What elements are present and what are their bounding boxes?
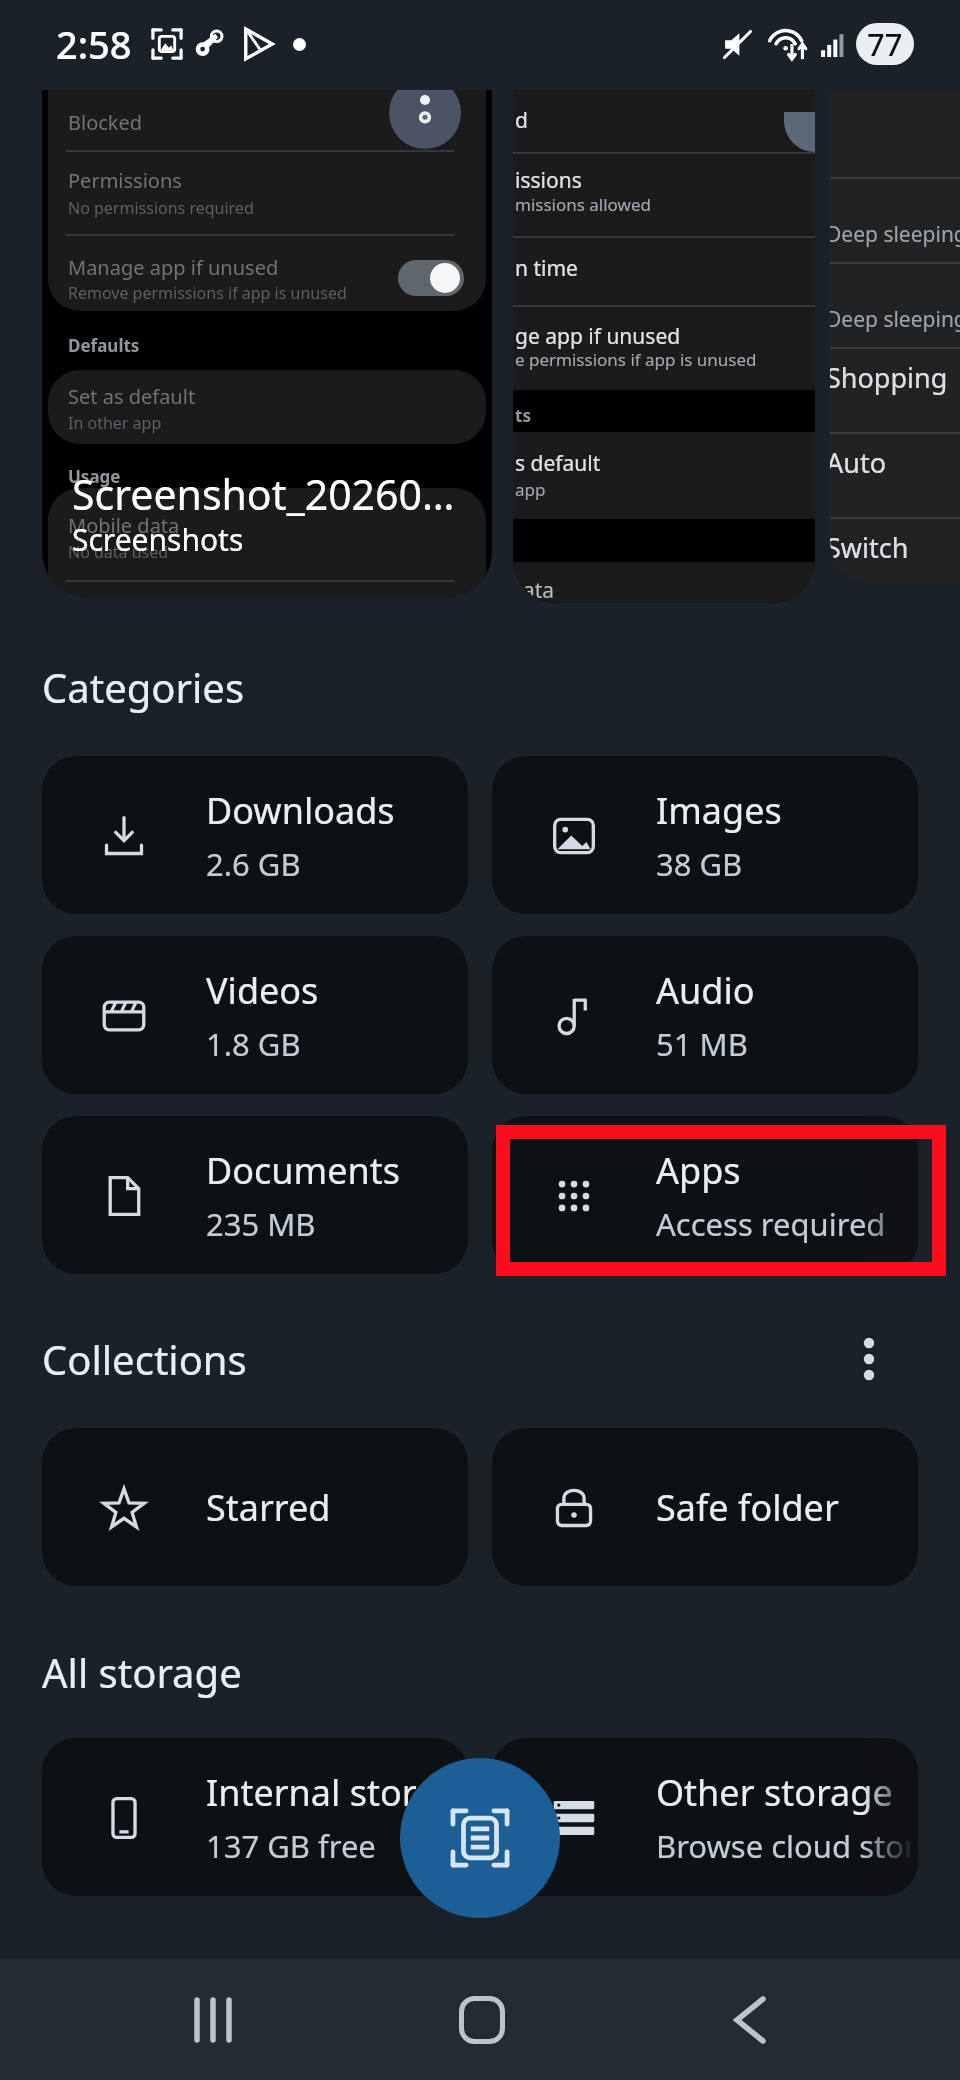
staticText: Documents: [206, 1146, 401, 1195]
button[interactable]: Other storage: [492, 1738, 918, 1896]
staticText: Manage app if unused: [68, 254, 279, 281]
button[interactable]: Downloads: [42, 756, 468, 914]
staticText: Deep sleeping: [830, 220, 960, 249]
staticText: Collections: [42, 1332, 247, 1386]
staticText: In other app: [68, 412, 162, 434]
staticText: Other storage: [656, 1768, 893, 1817]
button[interactable]: Safe folder: [492, 1428, 918, 1586]
staticText: 1.8 GB: [206, 1023, 301, 1065]
button[interactable]: Audio: [492, 936, 918, 1094]
staticText: Categories: [42, 660, 245, 714]
button[interactable]: Videos: [42, 936, 468, 1094]
staticText: 51 MB: [656, 1023, 748, 1065]
button[interactable]: Blocked: [42, 90, 492, 596]
staticText: ge app if unused: [515, 322, 681, 351]
staticText: ts: [515, 404, 531, 427]
button[interactable]: Deep sleeping: [830, 90, 960, 584]
button[interactable]: Recents: [133, 1959, 293, 2080]
staticText: Auto: [830, 444, 887, 481]
button[interactable]: Documents: [42, 1116, 468, 1274]
staticText: 2.6 GB: [206, 843, 301, 885]
staticText: Screenshot_20260…: [72, 466, 455, 522]
staticText: issions: [515, 166, 582, 195]
staticText: 235 MB: [206, 1203, 316, 1245]
staticText: missions allowed: [515, 193, 651, 216]
staticText: All storage: [42, 1645, 242, 1699]
staticText: d: [515, 106, 528, 135]
staticText: Deep sleeping: [830, 305, 960, 334]
staticText: No data used: [68, 541, 169, 563]
staticText: Starred: [206, 1483, 331, 1532]
staticText: 2:58: [56, 18, 132, 70]
staticText: Blocked: [68, 109, 143, 136]
staticText: e permissions if app is unused: [515, 348, 757, 371]
staticText: Shopping: [830, 359, 948, 396]
staticText: Mobile data: [68, 512, 180, 539]
staticText: Switch: [830, 529, 909, 566]
staticText: Permissions: [68, 167, 182, 194]
staticText: Usage: [68, 465, 121, 488]
button[interactable]: Starred: [42, 1428, 468, 1586]
button[interactable]: Apps: [492, 1116, 918, 1274]
staticText: No permissions required: [68, 197, 254, 219]
staticText: 77: [867, 23, 903, 65]
staticText: 137 GB free: [206, 1825, 376, 1867]
staticText: Remove permissions if app is unused: [68, 282, 347, 304]
staticText: app: [515, 478, 546, 501]
staticText: Audio: [656, 966, 755, 1015]
staticText: Downloads: [206, 786, 395, 835]
staticText: Internal storage: [206, 1768, 468, 1817]
staticText: 38 GB: [656, 843, 743, 885]
button[interactable]: Images: [492, 756, 918, 914]
staticText: Images: [656, 786, 782, 835]
staticText: Safe folder: [656, 1483, 839, 1532]
button[interactable]: Scan document: [400, 1758, 560, 1918]
staticText: Defaults: [68, 334, 140, 357]
staticText: Access required: [656, 1203, 886, 1245]
button[interactable]: d: [513, 90, 815, 603]
staticText: Videos: [206, 966, 319, 1015]
button[interactable]: Internal storage: [42, 1738, 468, 1896]
staticText: Apps: [656, 1146, 741, 1195]
staticText: Set as default: [68, 383, 196, 410]
staticText: s default: [515, 449, 601, 478]
button[interactable]: Home: [402, 1959, 562, 2080]
staticText: n time: [515, 254, 578, 283]
staticText: ata: [523, 576, 555, 603]
staticText: Browse cloud stor: [656, 1825, 917, 1867]
staticText: Screenshots: [72, 519, 244, 560]
button[interactable]: More options: [827, 1330, 911, 1388]
button[interactable]: Back: [670, 1959, 830, 2080]
